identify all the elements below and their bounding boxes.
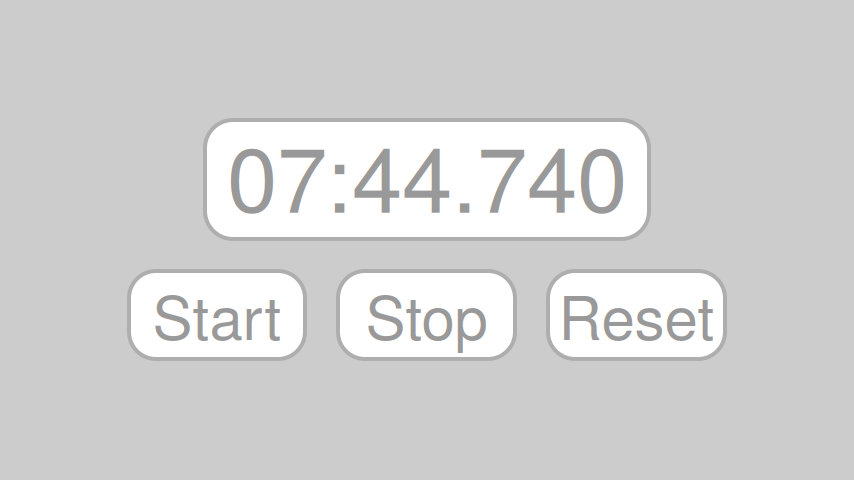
button[interactable]: Stop xyxy=(338,271,515,359)
staticText: Reset xyxy=(558,271,714,357)
staticText: Stop xyxy=(365,271,487,357)
button[interactable]: Reset xyxy=(548,271,725,359)
button[interactable]: Start xyxy=(129,271,305,359)
staticText: Start xyxy=(152,271,281,357)
staticText: 07:44.740 xyxy=(227,109,627,238)
